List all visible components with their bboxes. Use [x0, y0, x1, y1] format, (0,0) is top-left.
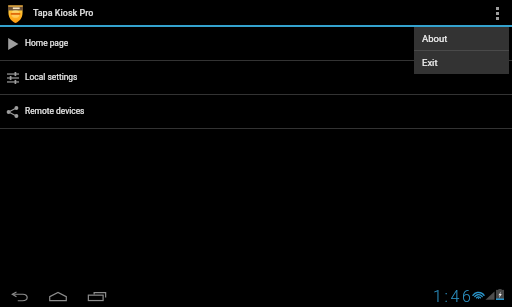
staticText: Remote devices [25, 106, 85, 116]
staticText: 1:46 [433, 287, 474, 306]
button[interactable]: More options [483, 1, 512, 26]
button[interactable]: Local settings [0, 61, 512, 94]
staticText: Tapa Kiosk Pro [33, 8, 94, 19]
staticText: Home page [25, 38, 69, 48]
button[interactable]: Remote devices [0, 95, 512, 128]
staticText: About [422, 33, 448, 44]
button[interactable]: Back [7, 279, 33, 307]
staticText: Exit [422, 57, 438, 68]
button[interactable]: Recent apps [84, 279, 110, 307]
button[interactable]: Home page [0, 27, 512, 60]
button[interactable]: Home [45, 279, 71, 307]
button[interactable]: About [414, 27, 509, 50]
button[interactable]: Exit [414, 51, 509, 74]
staticText: Local settings [25, 72, 78, 82]
